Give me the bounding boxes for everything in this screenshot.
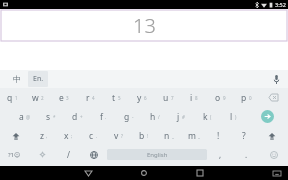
staticText: (: [210, 114, 212, 120]
staticText: 7: [171, 95, 174, 101]
button[interactable]: !: [206, 126, 231, 145]
staticText: w: [32, 92, 39, 104]
button[interactable]: s: [38, 107, 64, 126]
staticText: c: [89, 130, 94, 142]
staticText: e: [59, 92, 64, 104]
button[interactable]: e: [51, 88, 77, 107]
staticText: p: [241, 92, 247, 104]
button[interactable]: Change language: [81, 145, 107, 164]
staticText: 3: [66, 95, 69, 101]
staticText: .: [96, 133, 98, 139]
button[interactable]: h: [142, 107, 168, 126]
button[interactable]: Recent apps: [183, 166, 217, 180]
staticText: f: [100, 111, 103, 123]
button[interactable]: ?1☺: [0, 145, 29, 164]
staticText: l: [230, 111, 233, 123]
button[interactable]: d: [64, 107, 90, 126]
staticText: .: [105, 114, 107, 120]
staticText: -: [132, 114, 134, 120]
staticText: 0: [249, 95, 252, 101]
staticText: /: [67, 149, 70, 160]
button[interactable]: ,: [207, 145, 233, 164]
staticText: #: [182, 114, 185, 120]
staticText: @: [26, 114, 31, 120]
staticText: t: [112, 92, 116, 104]
staticText: +: [80, 114, 83, 120]
button[interactable]: c: [81, 126, 106, 145]
button[interactable]: Shift: [256, 126, 288, 145]
button[interactable]: k: [194, 107, 220, 126]
button[interactable]: Enter: [246, 107, 288, 126]
button[interactable]: u: [155, 88, 181, 107]
button[interactable]: En.: [28, 71, 48, 87]
button[interactable]: Home: [127, 166, 161, 180]
button[interactable]: f: [90, 107, 116, 126]
button[interactable]: m: [181, 126, 206, 145]
button[interactable]: Shift: [0, 126, 31, 145]
button[interactable]: Voice input: [270, 73, 282, 85]
staticText: 8: [195, 95, 198, 101]
button[interactable]: o: [207, 88, 233, 107]
staticText: /: [158, 114, 160, 120]
staticText: ?: [121, 133, 123, 139]
button[interactable]: .: [233, 145, 259, 164]
staticText: ?: [242, 130, 246, 142]
button[interactable]: Back: [71, 166, 105, 180]
staticText: b: [139, 130, 145, 142]
button[interactable]: b: [131, 126, 156, 145]
staticText: g: [124, 111, 130, 123]
staticText: 2: [41, 95, 44, 101]
staticText: s: [46, 111, 51, 123]
staticText: *: [53, 114, 56, 120]
staticText: _: [172, 133, 174, 139]
staticText: m: [188, 130, 196, 142]
button[interactable]: ?: [231, 126, 256, 145]
staticText: ?1☺: [8, 151, 21, 159]
button[interactable]: English: [107, 149, 207, 160]
staticText: 3:52: [275, 1, 286, 8]
button[interactable]: /: [55, 145, 81, 164]
button[interactable]: Backspace: [259, 88, 288, 107]
button[interactable]: g: [116, 107, 142, 126]
staticText: English: [147, 151, 168, 159]
button[interactable]: q: [0, 88, 25, 107]
button[interactable]: n: [156, 126, 181, 145]
staticText: 4: [92, 95, 95, 101]
staticText: v: [114, 130, 119, 142]
staticText: 9: [223, 95, 226, 101]
button[interactable]: x: [56, 126, 81, 145]
staticText: ,: [219, 149, 222, 160]
button[interactable]: Emoji: [259, 145, 288, 164]
other: Notification: [3, 2, 8, 7]
staticText: a: [19, 111, 24, 123]
button[interactable]: i: [181, 88, 207, 107]
staticText: j: [177, 111, 180, 123]
staticText: 6: [144, 95, 147, 101]
staticText: ,: [46, 133, 48, 139]
button[interactable]: a: [12, 107, 38, 126]
button[interactable]: 中: [8, 71, 26, 87]
staticText: k: [203, 111, 208, 123]
button[interactable]: w: [25, 88, 51, 107]
staticText: r: [86, 92, 90, 104]
staticText: i: [190, 92, 193, 104]
button[interactable]: t: [103, 88, 129, 107]
staticText: d: [72, 111, 78, 123]
button[interactable]: 13: [1, 10, 287, 41]
button[interactable]: r: [77, 88, 103, 107]
staticText: !: [147, 133, 149, 139]
staticText: .: [245, 149, 248, 160]
button[interactable]: j: [168, 107, 194, 126]
button[interactable]: z: [31, 126, 56, 145]
staticText: o: [215, 92, 221, 104]
staticText: !: [217, 130, 220, 142]
staticText: h: [150, 111, 156, 123]
staticText: 1: [15, 95, 18, 101]
button[interactable]: v: [106, 126, 131, 145]
button[interactable]: Switch keyboard: [270, 166, 284, 180]
button[interactable]: y: [129, 88, 155, 107]
button[interactable]: p: [233, 88, 259, 107]
staticText: _: [198, 133, 200, 139]
button[interactable]: l: [220, 107, 246, 126]
button[interactable]: Cursor control: [29, 145, 55, 164]
